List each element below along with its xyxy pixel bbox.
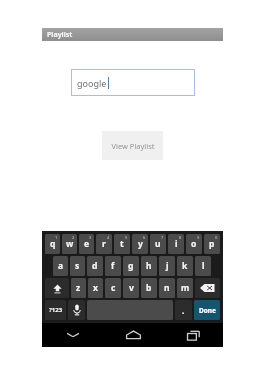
button[interactable]: 7 xyxy=(150,234,166,254)
button[interactable]: x xyxy=(88,278,103,298)
staticText: a xyxy=(58,260,64,272)
staticText: ?123 xyxy=(49,306,63,314)
button[interactable]: b xyxy=(141,278,157,298)
staticText: v xyxy=(129,282,134,294)
staticText: g xyxy=(128,260,134,272)
staticText: View Playlist xyxy=(111,141,155,151)
button[interactable]: Backspace xyxy=(195,278,220,298)
staticText: z xyxy=(76,282,81,294)
button[interactable]: 0 xyxy=(204,234,220,254)
staticText: w xyxy=(66,238,74,250)
button[interactable]: Home xyxy=(103,323,163,347)
button[interactable]: 1 xyxy=(45,234,60,254)
button[interactable]: a xyxy=(53,256,68,276)
button[interactable]: g xyxy=(123,256,139,276)
button[interactable]: 8 xyxy=(168,234,184,254)
staticText: i xyxy=(175,238,178,250)
staticText: e xyxy=(84,238,90,250)
staticText: 4 xyxy=(107,235,110,240)
staticText: 7 xyxy=(161,235,164,240)
staticText: m xyxy=(181,282,190,294)
staticText: l xyxy=(202,260,205,272)
button[interactable]: 5 xyxy=(114,234,130,254)
staticText: . xyxy=(182,305,185,316)
button[interactable]: h xyxy=(141,256,157,276)
staticText: 6 xyxy=(143,235,146,240)
button[interactable]: s xyxy=(70,256,85,276)
staticText: 2 xyxy=(72,235,75,240)
button[interactable]: k xyxy=(177,256,193,276)
button[interactable]: 4 xyxy=(96,234,112,254)
button[interactable]: Done xyxy=(194,300,220,320)
button[interactable]: d xyxy=(87,256,103,276)
staticText: x xyxy=(93,282,98,294)
staticText: google xyxy=(77,77,107,89)
staticText: b xyxy=(146,282,152,294)
staticText: Done xyxy=(199,306,216,315)
staticText: h xyxy=(146,260,152,272)
staticText: 5 xyxy=(125,235,128,240)
button[interactable]: View Playlist xyxy=(102,131,163,160)
button[interactable]: f xyxy=(105,256,121,276)
button[interactable]: 9 xyxy=(186,234,202,254)
button[interactable]: z xyxy=(71,278,86,298)
staticText: q xyxy=(50,238,56,250)
staticText: 0 xyxy=(215,235,218,240)
staticText: d xyxy=(92,260,98,272)
button[interactable]: Recent apps xyxy=(163,323,223,347)
button[interactable]: 3 xyxy=(79,234,94,254)
staticText: y xyxy=(138,238,143,250)
button[interactable]: m xyxy=(177,278,193,298)
button[interactable]: Shift xyxy=(45,278,69,298)
button[interactable]: ?123 xyxy=(45,300,66,320)
button[interactable]: google xyxy=(71,69,195,96)
staticText: 8 xyxy=(179,235,182,240)
button[interactable]: j xyxy=(159,256,175,276)
staticText: t xyxy=(120,238,124,250)
staticText: j xyxy=(166,260,169,272)
staticText: k xyxy=(182,260,188,272)
button[interactable]: 2 xyxy=(62,234,77,254)
staticText: 3 xyxy=(89,235,92,240)
staticText: 1 xyxy=(55,235,58,240)
button[interactable]: l xyxy=(195,256,211,276)
button[interactable]: . xyxy=(175,300,192,320)
staticText: Playlist xyxy=(47,30,73,40)
staticText: n xyxy=(164,282,170,294)
staticText: s xyxy=(75,260,80,272)
button[interactable]: Voice input xyxy=(68,300,85,320)
staticText: o xyxy=(191,238,197,250)
button[interactable]: Hide keyboard xyxy=(42,323,103,347)
button[interactable]: v xyxy=(123,278,139,298)
staticText: c xyxy=(111,282,116,294)
staticText: 9 xyxy=(197,235,200,240)
staticText: f xyxy=(111,260,115,272)
staticText: u xyxy=(155,238,161,250)
staticText: r xyxy=(102,238,106,250)
staticText: p xyxy=(209,238,215,250)
button[interactable]: 6 xyxy=(132,234,148,254)
button[interactable]: n xyxy=(159,278,175,298)
button[interactable]: c xyxy=(105,278,121,298)
